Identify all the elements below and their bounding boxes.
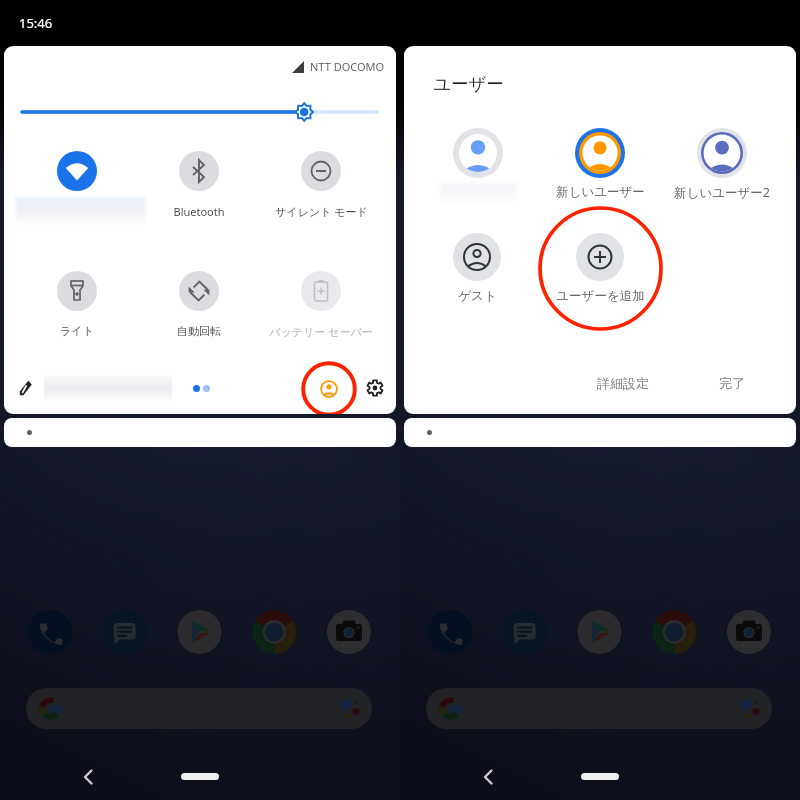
staticText: ゲスト [458,288,497,304]
button[interactable] [167,271,231,337]
staticText: サイレント モード [275,204,368,219]
button[interactable]: Home [181,773,219,780]
button[interactable]: Edit [19,380,35,396]
button[interactable] [289,151,353,217]
staticText: ライト [60,324,94,338]
staticText: 新しいユーザー [556,184,645,200]
button[interactable]: Back [478,767,498,787]
button[interactable] [45,151,109,217]
button[interactable]: Back [78,767,98,787]
staticText: 詳細設定 [597,375,649,391]
staticText: ユーザー [433,73,504,95]
button[interactable]: 完了 [707,367,757,399]
button[interactable] [45,271,109,337]
staticText: バッテリー セーバー [269,324,373,339]
button[interactable] [4,46,396,414]
staticText: ユーザーを追加 [556,288,645,304]
button[interactable]: Settings [367,380,383,396]
button[interactable] [444,119,512,187]
button[interactable] [688,119,756,187]
staticText: 完了 [719,375,745,391]
button[interactable]: 詳細設定 [585,367,661,399]
staticText: 15:46 [19,14,53,32]
button[interactable] [566,119,634,187]
button[interactable]: Home [581,773,619,780]
button[interactable] [167,151,231,217]
button[interactable] [443,223,511,291]
staticText: Bluetooth [173,204,225,219]
staticText: 新しいユーザー2 [674,184,770,201]
button[interactable] [289,271,353,337]
staticText: NTT DOCOMO [310,59,385,74]
button[interactable]: User [300,360,358,412]
button[interactable] [566,223,634,291]
staticText: 自動回転 [177,324,221,338]
